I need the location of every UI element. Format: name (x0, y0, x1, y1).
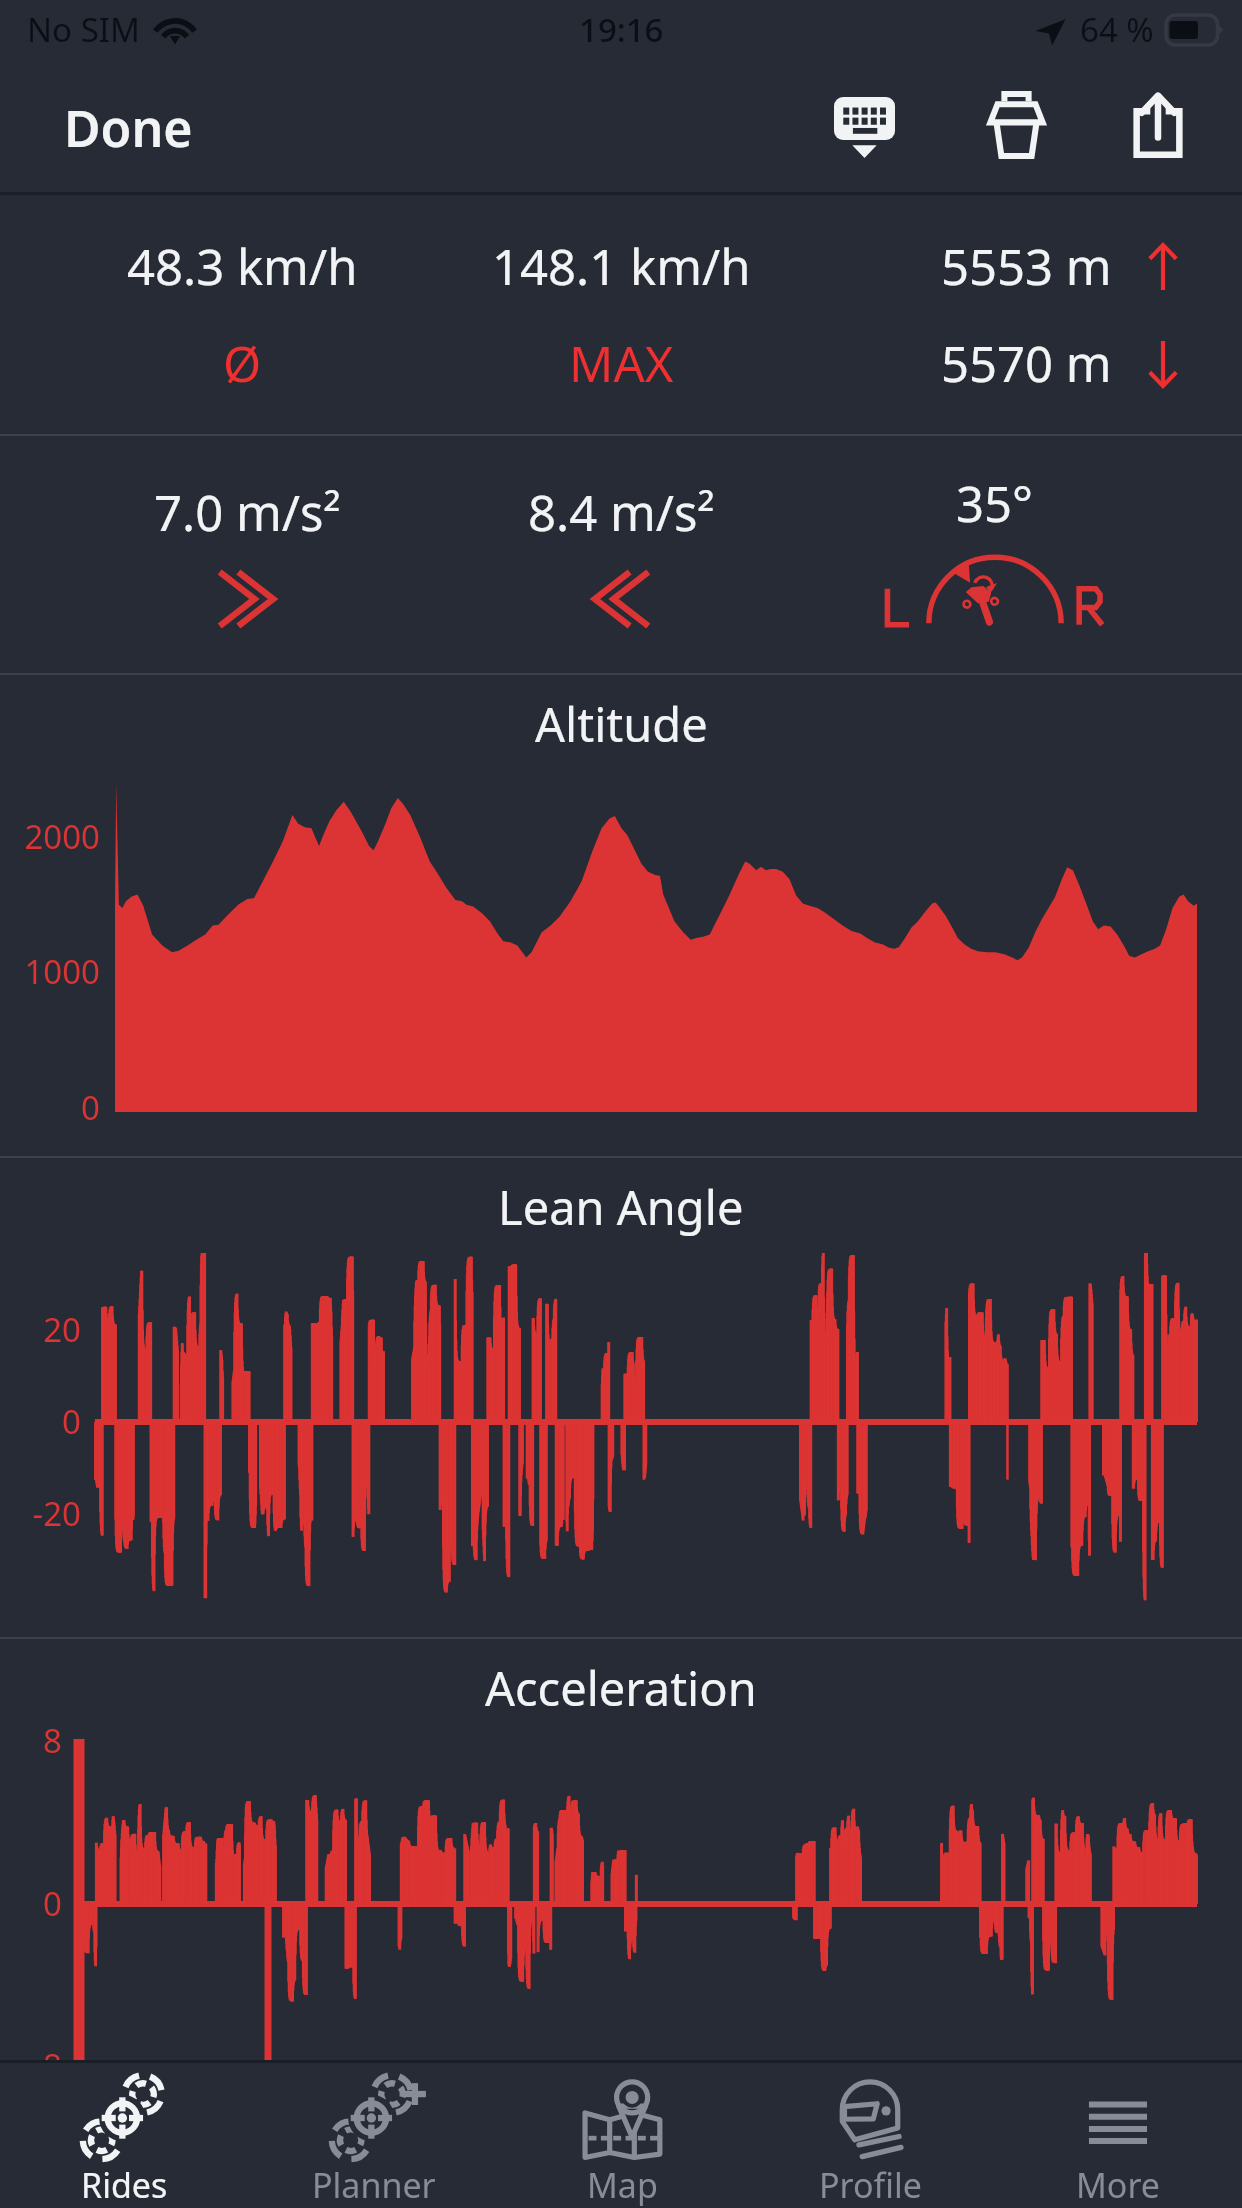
button[interactable]: 8.4 m/s² (414, 436, 828, 673)
staticText: Ø (223, 330, 262, 397)
button[interactable]: Delete ride (955, 57, 1078, 191)
button[interactable]: Done (8, 58, 249, 192)
button[interactable]: More (994, 2063, 1242, 2208)
button[interactable]: Profile (746, 2063, 994, 2208)
button[interactable]: Rides (0, 2063, 249, 2208)
staticText: 0 (0, 1085, 100, 1130)
staticText: 48.3 km/h (127, 233, 358, 300)
button[interactable]: 35° (828, 436, 1242, 673)
staticText: No SIM (27, 7, 140, 52)
button[interactable]: 148.1 km/h (414, 195, 828, 434)
button[interactable]: Share (1100, 58, 1216, 191)
button[interactable]: 7.0 m/s² (0, 436, 414, 673)
staticText: MAX (569, 330, 674, 397)
staticText: Map (587, 2162, 658, 2208)
staticText: 1000 (0, 949, 100, 994)
staticText: 20 (0, 1307, 81, 1352)
staticText: 0 (0, 1399, 81, 1444)
staticText: 8 (0, 1718, 62, 1763)
staticText: More (1076, 2162, 1160, 2208)
button[interactable]: Hide keyboard (800, 63, 929, 192)
staticText: 5553 m (941, 233, 1112, 300)
staticText: Profile (819, 2162, 922, 2208)
staticText: 148.1 km/h (492, 233, 751, 300)
staticText: 8.4 m/s² (528, 479, 715, 546)
button[interactable]: 5553 m (828, 195, 1242, 434)
staticText: 7.0 m/s² (154, 479, 341, 546)
staticText: 5570 m (941, 330, 1112, 397)
staticText: Planner (312, 2162, 436, 2208)
button[interactable]: Acceleration (0, 1639, 1242, 2069)
staticText: 2000 (0, 814, 100, 859)
button[interactable]: 48.3 km/h (0, 195, 414, 434)
button[interactable]: Lean Angle (0, 1158, 1242, 1637)
button[interactable]: Map (498, 2063, 746, 2208)
staticText: 19:16 (579, 7, 664, 52)
staticText: -8 (0, 2043, 62, 2088)
staticText: 0 (0, 1881, 62, 1926)
staticText: -20 (0, 1491, 81, 1536)
staticText: 35° (956, 470, 1034, 537)
staticText: Rides (81, 2162, 168, 2208)
staticText: Done (64, 94, 193, 156)
staticText: Acceleration (485, 1656, 757, 1720)
staticText: Altitude (535, 692, 708, 756)
button[interactable]: Altitude (0, 675, 1242, 1156)
staticText: Lean Angle (498, 1175, 744, 1239)
staticText: 64 % (1080, 7, 1154, 52)
button[interactable]: Planner (249, 2063, 498, 2208)
